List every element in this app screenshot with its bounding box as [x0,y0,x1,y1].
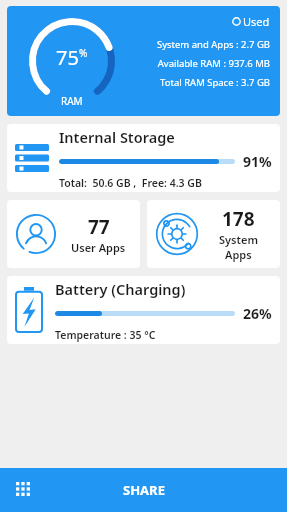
staticText: RAM [61,94,83,108]
staticText: System and Apps : 2.7 GB [156,38,270,51]
staticText: 26% [243,304,272,323]
button[interactable]: 178 [147,200,280,268]
staticText: Total RAM Space : 3.7 GB [160,76,270,89]
staticText: SHARE [123,481,165,499]
button[interactable]: Internal Storage [7,124,280,192]
staticText: Apps [225,247,252,262]
staticText: 75 [56,44,79,71]
button[interactable]: Apps grid [0,468,48,512]
staticText: Temperature : 35 °C [55,328,156,342]
staticText: 178 [222,206,255,232]
button[interactable]: Battery (Charging) [7,276,280,344]
staticText: Used [243,14,270,29]
staticText: Battery (Charging) [55,279,186,299]
staticText: Internal Storage [59,127,175,147]
button[interactable]: SHARE [123,468,165,512]
staticText: Available RAM : 937.6 MB [157,57,270,70]
staticText: Total: 50.6 GB , Free: 4.3 GB [59,176,202,190]
button[interactable]: 77 [7,200,140,268]
button[interactable]: 75 [7,6,280,116]
staticText: % [79,46,88,60]
staticText: User Apps [71,240,126,255]
staticText: System [219,232,258,247]
staticText: 91% [243,152,272,171]
staticText: 77 [88,214,110,240]
